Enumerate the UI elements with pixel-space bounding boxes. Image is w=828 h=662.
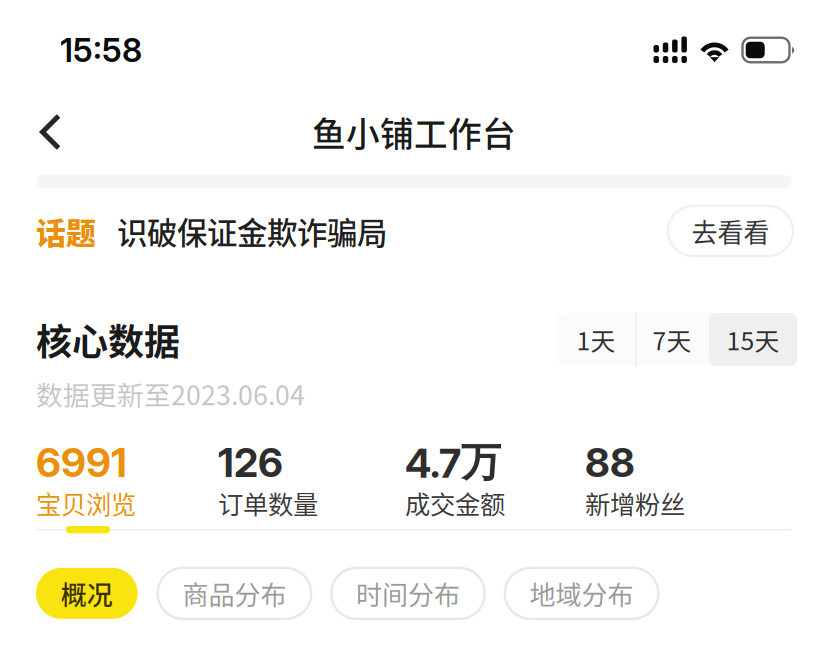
button[interactable]: Back <box>0 100 87 170</box>
button[interactable]: 概况 <box>36 568 138 619</box>
button[interactable]: 1天 <box>557 313 635 366</box>
staticText: 鱼小铺工作台 <box>312 108 516 156</box>
staticText: 4.7万 <box>405 437 501 488</box>
staticText: 商品分布 <box>182 575 286 612</box>
button[interactable]: 126 <box>218 447 405 516</box>
staticText: 15天 <box>726 321 779 357</box>
staticText: 数据更新至2023.06.04 <box>36 374 305 413</box>
staticText: 15:58 <box>60 30 142 70</box>
staticText: 6991 <box>36 438 127 487</box>
staticText: 话题 <box>36 209 96 253</box>
staticText: 地域分布 <box>530 575 634 612</box>
staticText: 126 <box>218 438 283 487</box>
staticText: 订单数量 <box>218 485 318 521</box>
staticText: 成交金额 <box>405 485 505 521</box>
button[interactable]: 时间分布 <box>331 568 485 619</box>
button[interactable]: 15天 <box>709 313 797 366</box>
button[interactable]: 88 <box>585 447 765 516</box>
button[interactable]: 6991 <box>36 447 218 516</box>
staticText: 核心数据 <box>36 313 180 365</box>
staticText: 88 <box>585 438 635 487</box>
staticText: 新增粉丝 <box>585 485 685 521</box>
staticText: 识破保证金欺诈骗局 <box>117 209 387 253</box>
staticText: 宝贝浏览 <box>36 485 136 521</box>
staticText: 去看看 <box>691 212 769 250</box>
button[interactable]: 商品分布 <box>158 568 311 619</box>
button[interactable]: 7天 <box>635 313 709 366</box>
staticText: 1天 <box>576 321 615 357</box>
staticText: 时间分布 <box>356 575 460 612</box>
button[interactable]: 去看看 <box>668 206 793 256</box>
staticText: 概况 <box>61 575 113 612</box>
button[interactable]: 话题 <box>36 200 387 262</box>
button[interactable]: 4.7万 <box>405 447 585 516</box>
button[interactable]: 地域分布 <box>505 568 658 619</box>
staticText: 7天 <box>652 321 691 357</box>
